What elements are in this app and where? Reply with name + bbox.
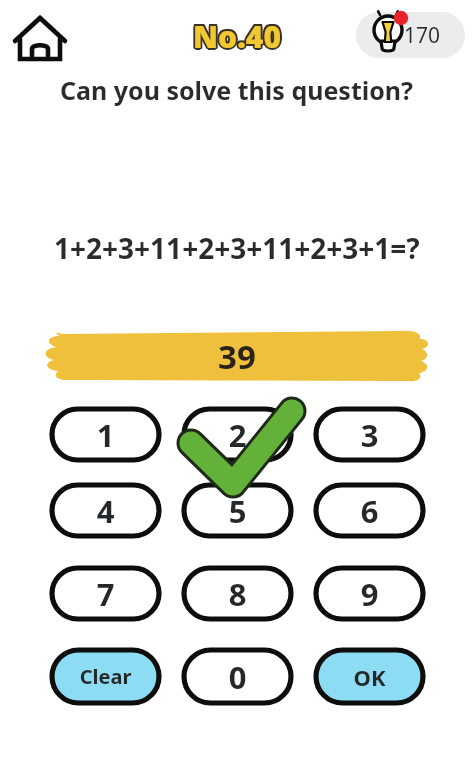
button[interactable]: Answer 39 [45, 330, 425, 382]
button[interactable]: Home [12, 14, 68, 64]
button[interactable]: 9 [316, 568, 423, 619]
button[interactable]: 7 [52, 568, 159, 619]
button[interactable]: 6 [316, 485, 423, 536]
button[interactable]: 8 [184, 568, 291, 619]
button[interactable]: 0 [184, 650, 291, 703]
button[interactable]: Hints 170 [356, 12, 465, 58]
button[interactable]: 4 [52, 485, 159, 536]
button[interactable]: 2 [184, 409, 291, 460]
button[interactable]: 3 [316, 409, 423, 460]
button[interactable]: OK [316, 650, 423, 703]
button[interactable]: Clear [52, 650, 159, 703]
button[interactable]: 1 [52, 409, 159, 460]
button[interactable]: 5 [184, 485, 291, 536]
